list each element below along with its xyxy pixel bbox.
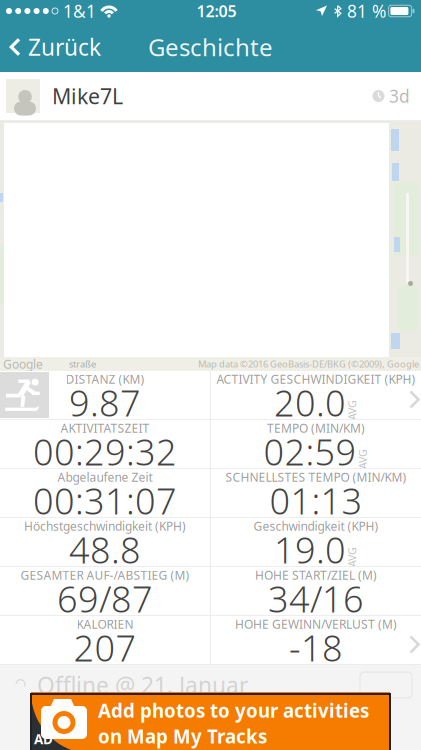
staticText: HÖHE START/ZIEL (M) [255, 567, 377, 583]
staticText: Google [3, 356, 43, 372]
button[interactable]: Zurück [0, 26, 101, 68]
staticText: DISTANZ (KM) [65, 371, 144, 387]
staticText: Offline @ 21. Januar [37, 670, 248, 700]
staticText: 207 [73, 624, 136, 671]
staticText: AVG [342, 550, 362, 564]
staticText: 00:29:32 [33, 428, 177, 475]
staticText: HÖHE GEWINN/VERLUST (M) [235, 616, 397, 632]
staticText: Abgelaufene Zeit [57, 469, 152, 485]
staticText: AVG [352, 452, 372, 466]
staticText: 48.8 [69, 526, 141, 573]
staticText: AKTIVITÄTSZEIT [60, 420, 149, 436]
staticText: Add photos to your activities [98, 698, 369, 723]
staticText: 9.87 [69, 379, 141, 426]
staticText: ACTIVITY GESCHWINDIGKEIT (KPH) [216, 371, 415, 387]
staticText: straße [69, 358, 96, 370]
staticText: 02:59 [263, 428, 356, 475]
staticText: GESAMTER AUF-/ABSTIEG (M) [20, 567, 189, 583]
staticText: Map data ©2016 GeoBasis-DE/BKG (©2009), … [198, 358, 419, 370]
staticText: 69/87 [57, 575, 153, 622]
button[interactable]: Add photos to your activities [31, 694, 390, 750]
staticText: 00:31:07 [33, 477, 177, 524]
staticText: Geschichte [148, 31, 273, 63]
staticText: Geschwindigkeit (KPH) [253, 518, 378, 534]
staticText: 19.0 [274, 526, 346, 573]
staticText: 12:05 [196, 0, 236, 22]
staticText: KALORIEN [76, 616, 133, 632]
button[interactable]: More elevation details [403, 629, 421, 660]
staticText: Zurück [28, 32, 101, 62]
button[interactable]: Mike7L [0, 72, 421, 120]
staticText: 3d [384, 84, 410, 107]
staticText: on Map My Tracks [98, 724, 267, 749]
button[interactable]: Activity type [0, 372, 49, 418]
staticText: 20.0 [274, 379, 346, 426]
staticText: TEMPO (MIN/KM) [267, 420, 365, 436]
staticText: 34/16 [268, 575, 364, 622]
staticText: SCHNELLSTES TEMPO (MIN/KM) [225, 469, 406, 485]
staticText: 1&1 [58, 0, 96, 22]
staticText: 01:13 [269, 477, 362, 524]
staticText: Höchstgeschwindigkeit (KPH) [24, 518, 186, 534]
button[interactable]: More activity details [403, 384, 421, 415]
staticText: -18 [289, 624, 343, 671]
staticText: AD [34, 730, 53, 748]
staticText: Mike7L [52, 82, 123, 110]
staticText: 81 % [342, 0, 386, 22]
staticText: AVG [342, 403, 362, 417]
